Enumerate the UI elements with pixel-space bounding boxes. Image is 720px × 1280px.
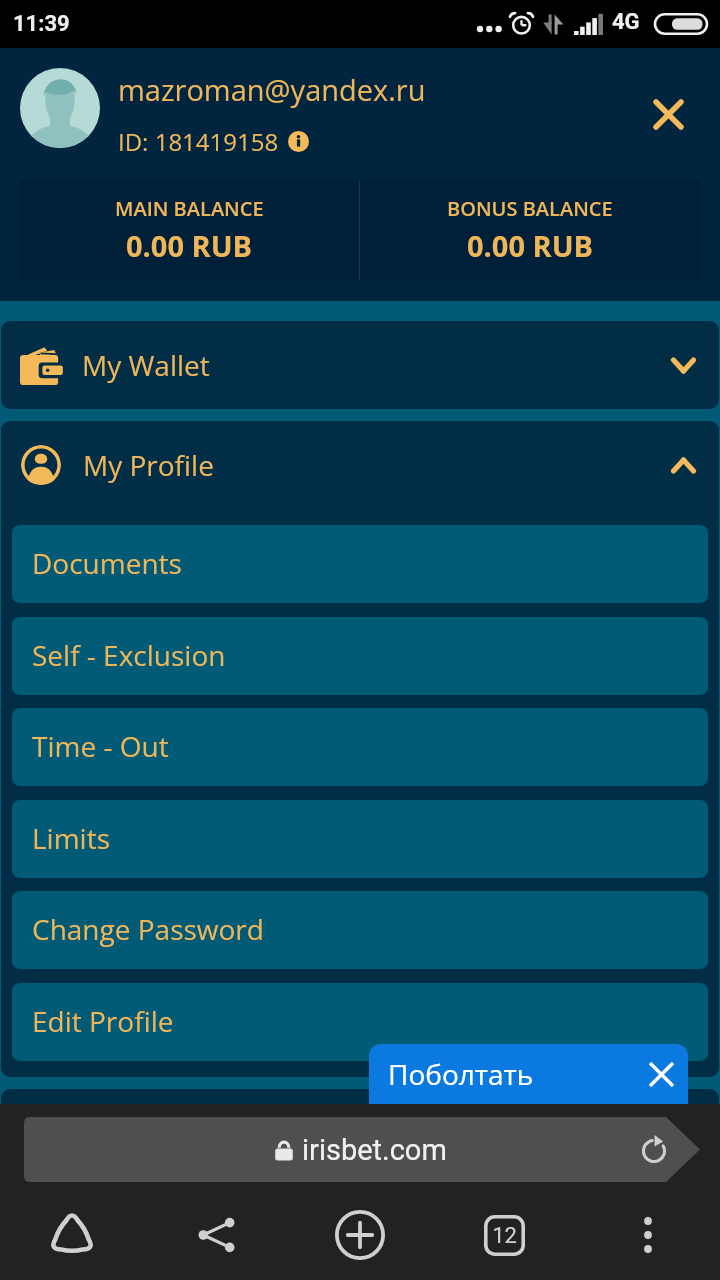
button[interactable]: Reload [635,1129,675,1169]
staticText: My Wallet [82,346,210,384]
button[interactable]: Поболтать [369,1044,688,1104]
staticText: irisbet.com [302,1133,447,1167]
button[interactable]: Self - Exclusion [12,617,708,695]
staticText: 12 [492,1223,517,1249]
staticText: Поболтать [388,1055,534,1093]
button[interactable]: Limits [12,800,708,878]
staticText: 0.00 RUB [126,226,253,265]
button[interactable]: Tabs [432,1190,576,1280]
staticText: MAIN BALANCE [115,195,264,222]
button[interactable]: Change Password [12,891,708,969]
button[interactable] [1,1089,719,1177]
button[interactable]: Home [0,1190,144,1280]
staticText: Documents [32,544,182,582]
button[interactable]: More options [576,1190,720,1280]
button[interactable]: Share [144,1190,288,1280]
staticText: Change Password [32,910,264,948]
staticText: BONUS BALANCE [447,195,613,222]
button[interactable]: Edit Profile [12,983,708,1061]
button[interactable]: Close chat [643,1056,679,1092]
staticText: ID: 181419158 [118,125,279,158]
button[interactable]: My Wallet [1,321,719,409]
staticText: Edit Profile [32,1002,174,1040]
staticText: 11:39 [13,11,70,37]
staticText: My Profile [83,446,214,484]
button[interactable]: Time - Out [12,708,708,786]
button[interactable]: BONUS BALANCE [360,180,700,280]
button[interactable]: Close [640,86,696,142]
staticText: Limits [32,819,110,857]
staticText: Time - Out [32,727,169,765]
button[interactable]: New tab [288,1190,432,1280]
staticText: mazroman@yandex.ru [118,70,426,109]
staticText: 0.00 RUB [467,226,594,265]
button[interactable]: MAIN BALANCE [20,180,359,280]
staticText: 4G [612,9,640,35]
button[interactable]: My Profile [1,421,719,509]
staticText: Self - Exclusion [32,636,226,674]
button[interactable]: Documents [12,525,708,603]
